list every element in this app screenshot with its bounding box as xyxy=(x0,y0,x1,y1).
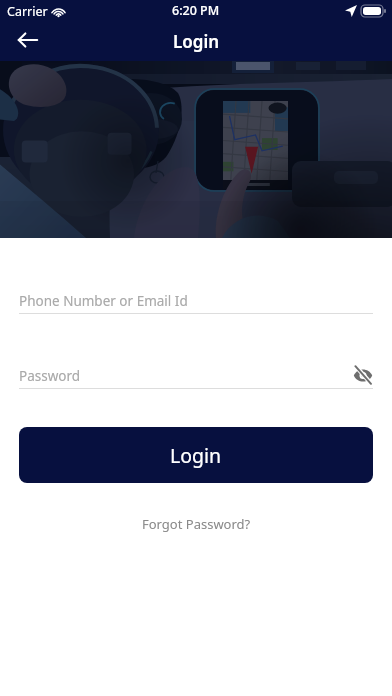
button[interactable]: Password xyxy=(19,314,373,385)
staticText: Login xyxy=(173,30,220,53)
button[interactable]: Back xyxy=(4,24,52,56)
staticText: Phone Number or Email Id xyxy=(19,292,188,310)
button[interactable]: Show password xyxy=(353,365,373,385)
button[interactable]: Forgot Password? xyxy=(142,515,251,533)
staticText: Password xyxy=(19,367,353,385)
staticText: 6:20 PM xyxy=(172,2,220,19)
staticText: Login xyxy=(170,442,222,469)
button[interactable]: Login xyxy=(19,427,373,483)
button[interactable]: Phone Number or Email Id xyxy=(19,238,373,310)
staticText: Carrier xyxy=(7,3,48,20)
